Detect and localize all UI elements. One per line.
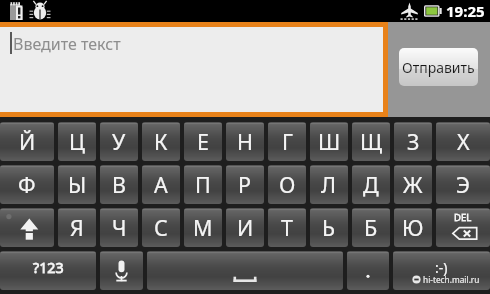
button[interactable]: Отправить [399,48,478,86]
staticText: Р [238,170,252,199]
button[interactable]: Х [436,122,490,161]
staticText: У [112,127,126,156]
button[interactable]: Р [226,165,264,204]
button[interactable]: Ц [58,122,96,161]
staticText: Отправить [402,58,475,77]
staticText: З [407,127,420,156]
button[interactable]: Введите текст [0,27,383,112]
button[interactable]: Б [352,208,390,247]
staticText: DEL [454,211,472,224]
staticText: Я [70,213,84,242]
button[interactable]: Voice input [100,251,143,290]
staticText: Ч [112,213,127,242]
button[interactable]: Э [436,165,490,204]
staticText: :-) [435,258,448,277]
button[interactable]: Й [0,122,54,161]
staticText: А [154,170,168,199]
staticText: К [154,127,168,156]
staticText: Х [457,127,470,156]
button[interactable]: Space [147,251,343,290]
staticText: И [237,213,254,242]
button[interactable]: З [394,122,432,161]
button[interactable]: Delete [436,208,490,247]
staticText: Ц [69,127,85,156]
button[interactable]: О [268,165,306,204]
button[interactable]: Ч [100,208,138,247]
staticText: Л [321,170,337,199]
staticText: В [112,170,126,199]
staticText: Ь [322,213,336,242]
staticText: М [193,213,213,242]
staticText: Б [364,213,378,242]
button[interactable]: В [100,165,138,204]
button[interactable]: Ю [394,208,432,247]
button[interactable]: Т [268,208,306,247]
staticText: П [195,170,211,199]
button[interactable]: Ж [394,165,432,204]
button[interactable]: С [142,208,180,247]
button[interactable]: Л [310,165,348,204]
button[interactable]: Ш [310,122,348,161]
button[interactable]: А [142,165,180,204]
button[interactable]: Е [184,122,222,161]
button[interactable]: Н [226,122,264,161]
button[interactable]: И [226,208,264,247]
button[interactable]: У [100,122,138,161]
staticText: О [279,170,296,199]
button[interactable]: Ф [0,165,54,204]
button[interactable]: Щ [352,122,390,161]
staticText: hi-tech.mail.ru [423,274,480,285]
button[interactable]: Ы [58,165,96,204]
button[interactable]: М [184,208,222,247]
button[interactable]: Ь [310,208,348,247]
staticText: ?123 [33,258,64,277]
staticText: Ф [18,170,36,199]
staticText: Д [363,170,379,199]
button[interactable]: Д [352,165,390,204]
button[interactable]: П [184,165,222,204]
staticText: Щ [360,127,383,156]
staticText: Ш [318,127,341,156]
button[interactable]: Г [268,122,306,161]
staticText: Т [281,213,293,242]
button[interactable]: :-) [393,251,490,290]
staticText: Введите текст [13,33,121,55]
button[interactable]: ?123 [0,251,96,290]
staticText: Н [237,127,253,156]
staticText: Й [19,127,36,156]
staticText: Ж [403,170,423,199]
staticText: Ю [402,213,424,242]
staticText: Э [456,170,470,199]
staticText: Ы [68,170,87,199]
staticText: С [154,213,168,242]
button[interactable]: Period [347,251,389,290]
button[interactable]: Shift [0,208,54,247]
staticText: Г [282,127,293,156]
button[interactable]: К [142,122,180,161]
staticText: Е [197,127,209,156]
staticText: 19:25 [446,1,485,21]
button[interactable]: Я [58,208,96,247]
